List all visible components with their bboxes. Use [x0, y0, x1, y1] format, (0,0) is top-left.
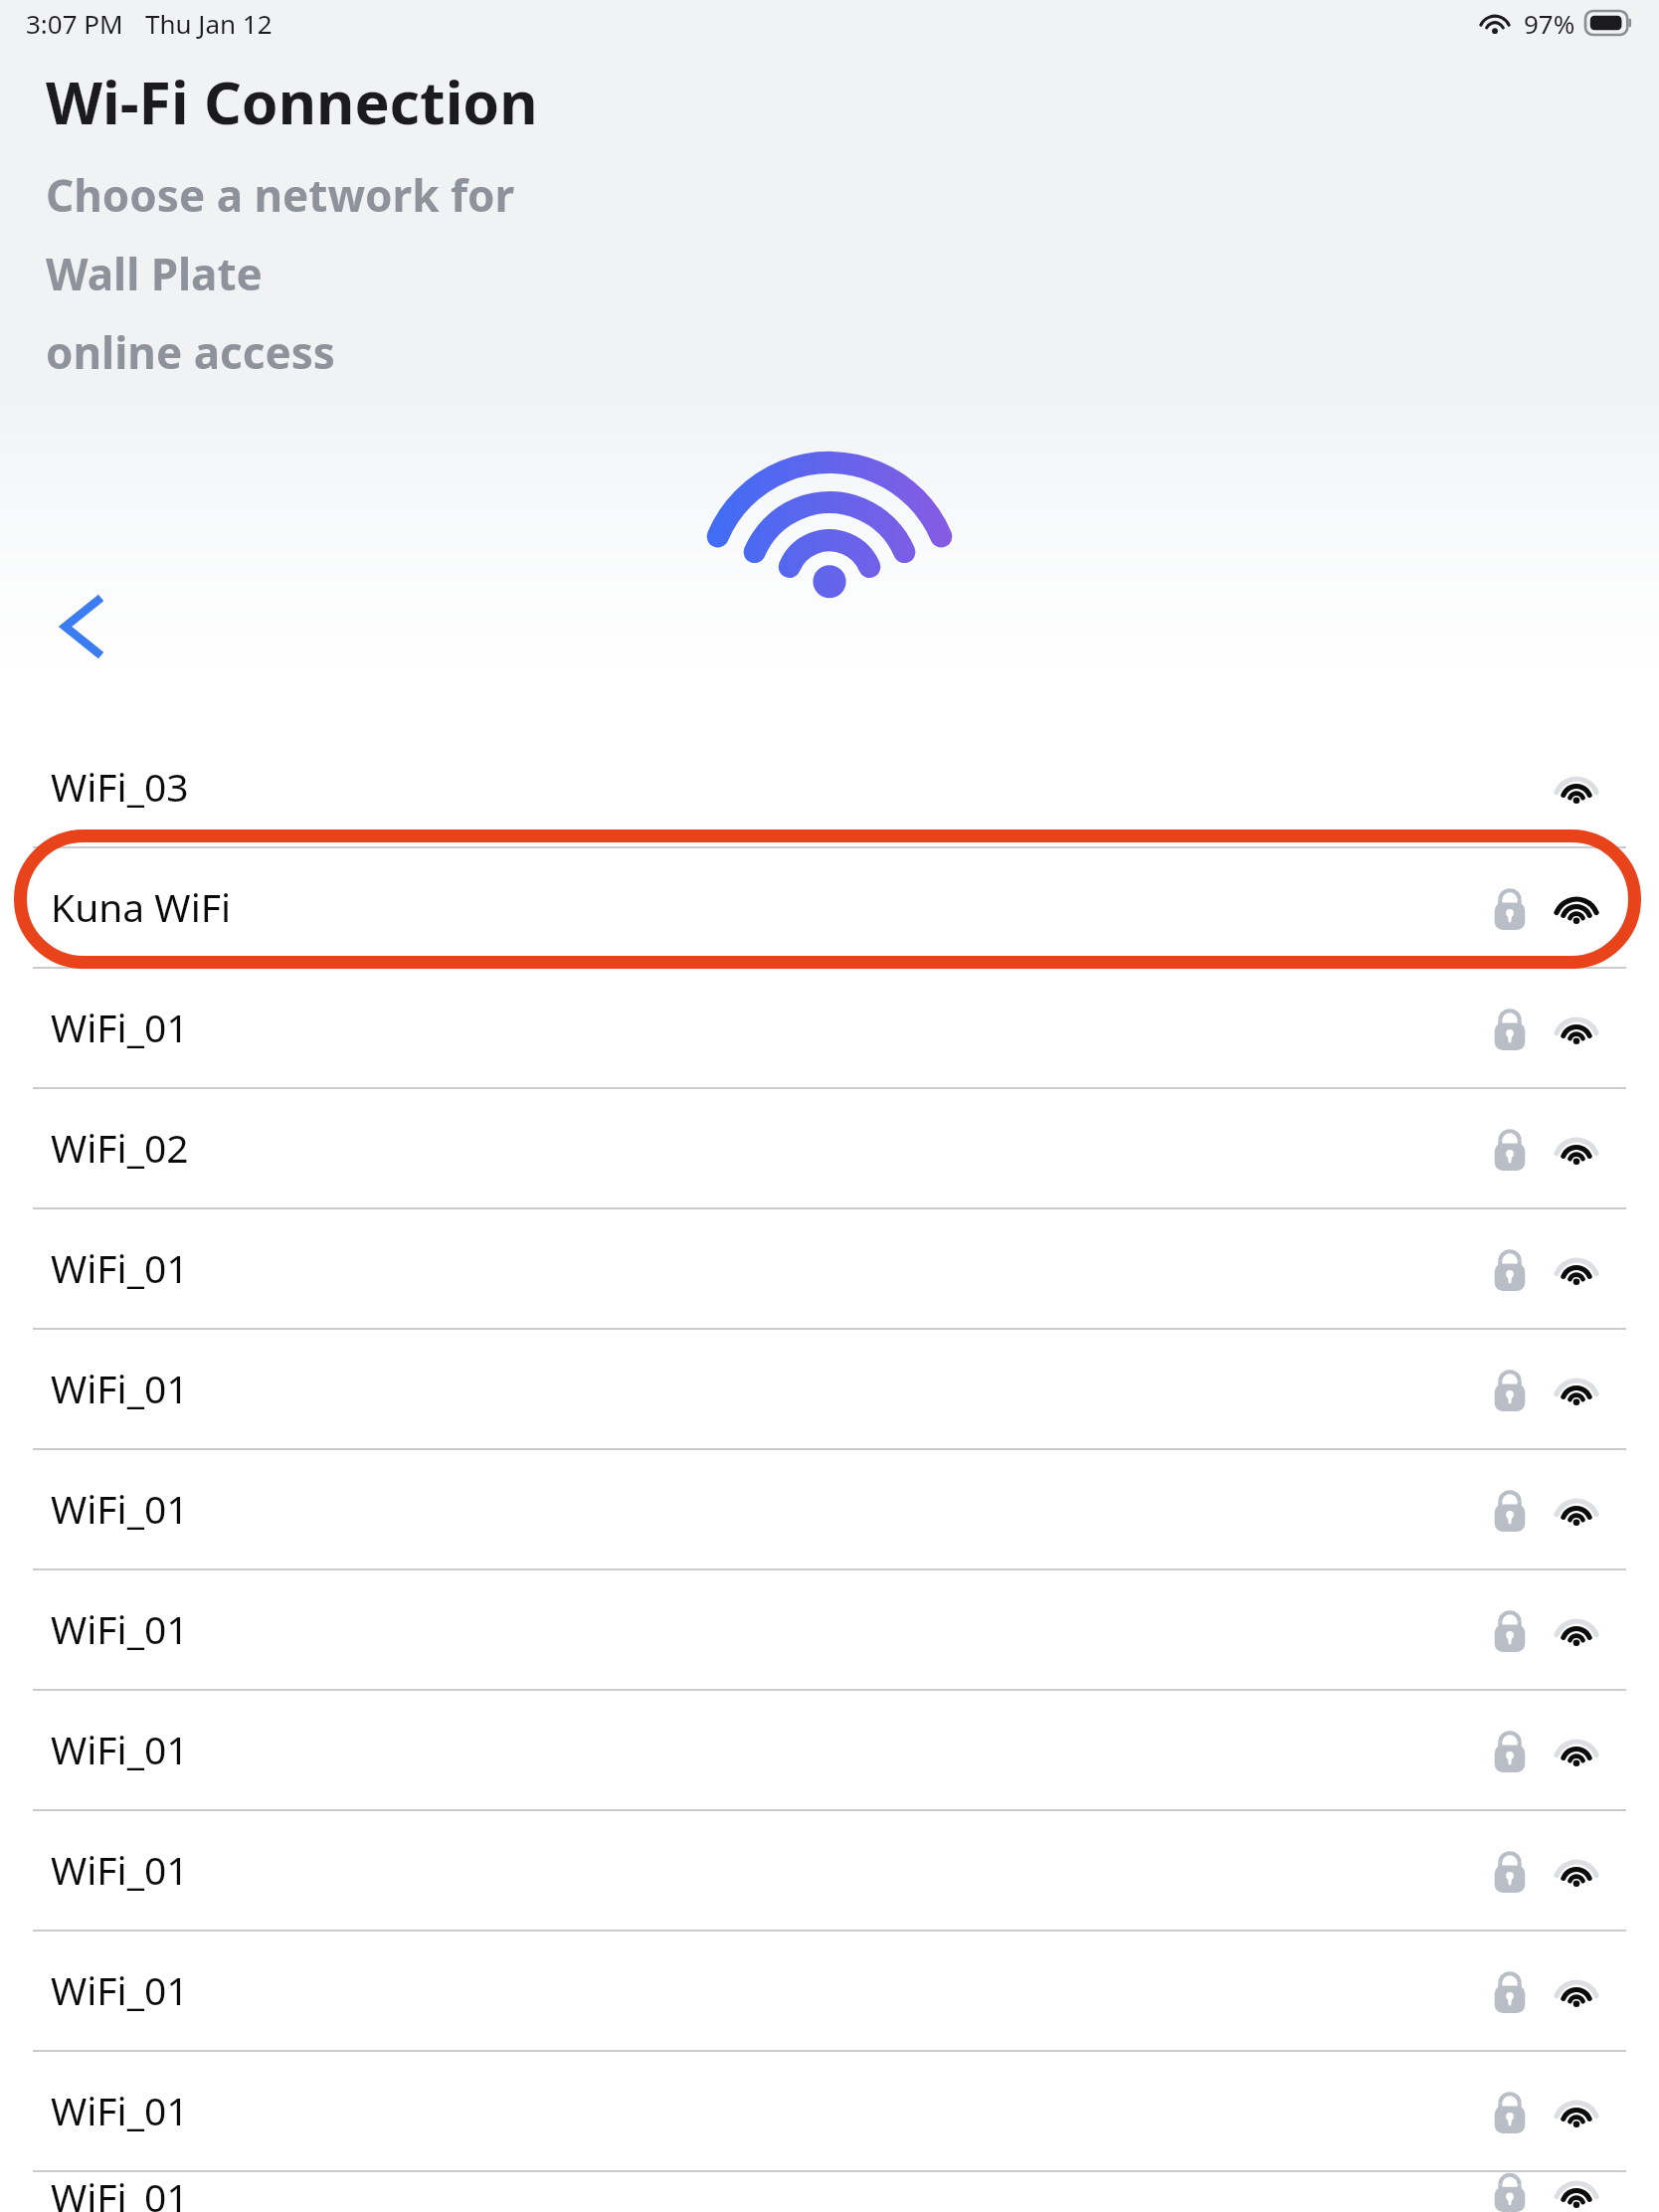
staticText: WiFi_01	[51, 1963, 189, 2016]
button[interactable]: WiFi_01	[33, 1568, 1626, 1689]
button[interactable]: WiFi_01	[33, 2050, 1626, 2170]
staticText: Thu Jan 12	[145, 6, 273, 41]
staticText: WiFi_02	[51, 1121, 189, 1174]
button[interactable]: Kuna WiFi	[33, 846, 1626, 967]
button[interactable]: WiFi_02	[33, 1087, 1626, 1207]
staticText: WiFi_01	[51, 1723, 189, 1775]
staticText: WiFi_01	[51, 2170, 189, 2212]
staticText: WiFi_01	[51, 1482, 189, 1535]
staticText: Kuna WiFi	[51, 880, 231, 933]
button[interactable]: WiFi_01	[33, 2170, 1626, 2212]
staticText: Choose a network for	[46, 165, 515, 225]
staticText: WiFi_01	[51, 1843, 189, 1896]
staticText: Wall Plate	[46, 244, 263, 303]
button[interactable]: WiFi_01	[33, 967, 1626, 1087]
button[interactable]: WiFi_01	[33, 1207, 1626, 1328]
staticText: WiFi_01	[51, 1602, 189, 1655]
staticText: 3:07 PM	[26, 6, 123, 41]
button[interactable]: WiFi_03	[33, 726, 1626, 846]
staticText: WiFi_03	[51, 760, 189, 813]
button[interactable]: Back	[26, 569, 141, 684]
staticText: Wi-Fi Connection	[46, 62, 538, 141]
staticText: WiFi_01	[51, 1241, 189, 1294]
staticText: WiFi_01	[51, 2084, 189, 2136]
staticText: WiFi_01	[51, 1362, 189, 1414]
button[interactable]: WiFi_01	[33, 1328, 1626, 1448]
button[interactable]: WiFi_01	[33, 1689, 1626, 1809]
staticText: online access	[46, 322, 335, 382]
button[interactable]: WiFi_01	[33, 1930, 1626, 2050]
staticText: 97%	[1524, 6, 1575, 41]
button[interactable]: WiFi_01	[33, 1448, 1626, 1568]
button[interactable]: WiFi_01	[33, 1809, 1626, 1930]
staticText: WiFi_01	[51, 1001, 189, 1053]
